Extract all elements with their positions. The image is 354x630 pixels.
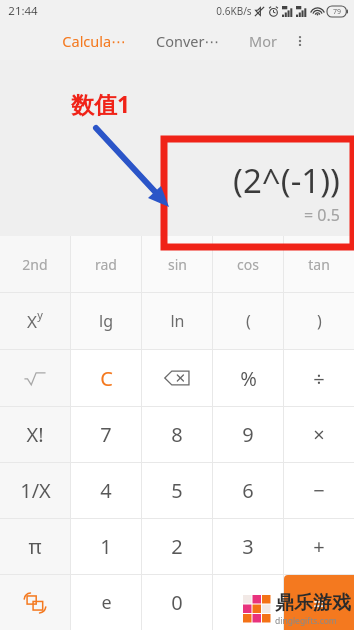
staticText: Mor bbox=[249, 31, 277, 51]
staticText: ln bbox=[170, 310, 185, 332]
button[interactable]: cos bbox=[213, 236, 283, 292]
button[interactable]: Backspace bbox=[142, 350, 212, 406]
button[interactable]: e bbox=[71, 575, 141, 630]
button[interactable]: 5 bbox=[142, 463, 212, 518]
button[interactable]: π bbox=[0, 519, 70, 574]
button[interactable]: 9 bbox=[213, 407, 283, 462]
button[interactable]: 2nd bbox=[0, 236, 70, 292]
staticText: 21:44 bbox=[8, 3, 38, 19]
staticText: − bbox=[313, 477, 325, 504]
button[interactable]: 8 bbox=[142, 407, 212, 462]
staticText: 4 bbox=[100, 477, 112, 504]
button[interactable]: 4 bbox=[71, 463, 141, 518]
button[interactable]: tan bbox=[284, 236, 354, 292]
staticText: 3 bbox=[242, 533, 254, 560]
button[interactable]: Switch layout bbox=[0, 575, 70, 630]
button[interactable]: ln bbox=[142, 293, 212, 349]
button[interactable]: ) bbox=[284, 293, 354, 349]
staticText: Conver⋯ bbox=[156, 31, 219, 51]
button[interactable]: C bbox=[71, 350, 141, 406]
button[interactable]: Equals bbox=[284, 575, 354, 630]
staticText: = 0.5 bbox=[304, 204, 340, 226]
staticText: C bbox=[100, 365, 113, 392]
staticText: tan bbox=[308, 255, 330, 274]
staticText: Calcula⋯ bbox=[62, 31, 126, 51]
button[interactable]: lg bbox=[71, 293, 141, 349]
staticText: 2nd bbox=[22, 255, 48, 274]
staticText: 数值1 bbox=[71, 88, 131, 119]
button[interactable]: 0 bbox=[142, 575, 212, 630]
staticText: rad bbox=[95, 255, 117, 274]
button[interactable]: X! bbox=[0, 407, 70, 462]
button[interactable]: 1/X bbox=[0, 463, 70, 518]
staticText: (2^(-1)) bbox=[233, 158, 340, 203]
button[interactable]: % bbox=[213, 350, 283, 406]
staticText: 8 bbox=[171, 421, 183, 448]
staticText: 1/X bbox=[20, 477, 51, 504]
button[interactable]: 2 bbox=[142, 519, 212, 574]
staticText: y bbox=[37, 307, 43, 322]
button[interactable]: Conver⋯ bbox=[152, 25, 223, 57]
staticText: 9 bbox=[242, 421, 254, 448]
button[interactable]: − bbox=[284, 463, 354, 518]
staticText: 0 bbox=[171, 589, 183, 616]
staticText: sin bbox=[168, 255, 187, 274]
button[interactable]: 1 bbox=[71, 519, 141, 574]
button[interactable]: sin bbox=[142, 236, 212, 292]
staticText: X bbox=[27, 310, 37, 333]
button[interactable]: ( bbox=[213, 293, 283, 349]
button[interactable]: 6 bbox=[213, 463, 283, 518]
staticText: = bbox=[313, 588, 326, 618]
staticText: e bbox=[101, 590, 112, 615]
staticText: dinglegifts.com bbox=[275, 615, 337, 627]
button[interactable]: Mor bbox=[245, 25, 281, 57]
staticText: ( bbox=[246, 310, 251, 332]
staticText: X! bbox=[26, 421, 44, 448]
staticText: 鼎乐游戏 bbox=[275, 591, 351, 615]
staticText: 1 bbox=[100, 533, 112, 560]
staticText: 2 bbox=[171, 533, 183, 560]
button[interactable]: ÷ bbox=[284, 350, 354, 406]
button[interactable]: × bbox=[284, 407, 354, 462]
button[interactable]: More options bbox=[289, 30, 311, 52]
staticText: π bbox=[28, 533, 42, 560]
button[interactable]: Square root bbox=[0, 350, 70, 406]
staticText: 5 bbox=[171, 477, 183, 504]
staticText: ) bbox=[317, 310, 322, 332]
button[interactable]: + bbox=[284, 519, 354, 574]
button[interactable]: 7 bbox=[71, 407, 141, 462]
staticText: cos bbox=[237, 255, 259, 274]
button[interactable]: 3 bbox=[213, 519, 283, 574]
staticText: + bbox=[313, 533, 325, 560]
staticText: . bbox=[245, 589, 251, 616]
staticText: 6 bbox=[242, 477, 254, 504]
staticText: 79 bbox=[333, 7, 342, 17]
button[interactable]: Calcula⋯ bbox=[58, 25, 130, 57]
staticText: 0.6KB/s bbox=[216, 4, 252, 18]
staticText: lg bbox=[99, 310, 113, 332]
staticText: × bbox=[313, 421, 325, 448]
staticText: 7 bbox=[100, 421, 112, 448]
button[interactable]: X bbox=[0, 293, 70, 349]
button[interactable]: . bbox=[213, 575, 283, 630]
button[interactable]: rad bbox=[71, 236, 141, 292]
staticText: % bbox=[240, 365, 257, 392]
staticText: ÷ bbox=[313, 365, 325, 392]
